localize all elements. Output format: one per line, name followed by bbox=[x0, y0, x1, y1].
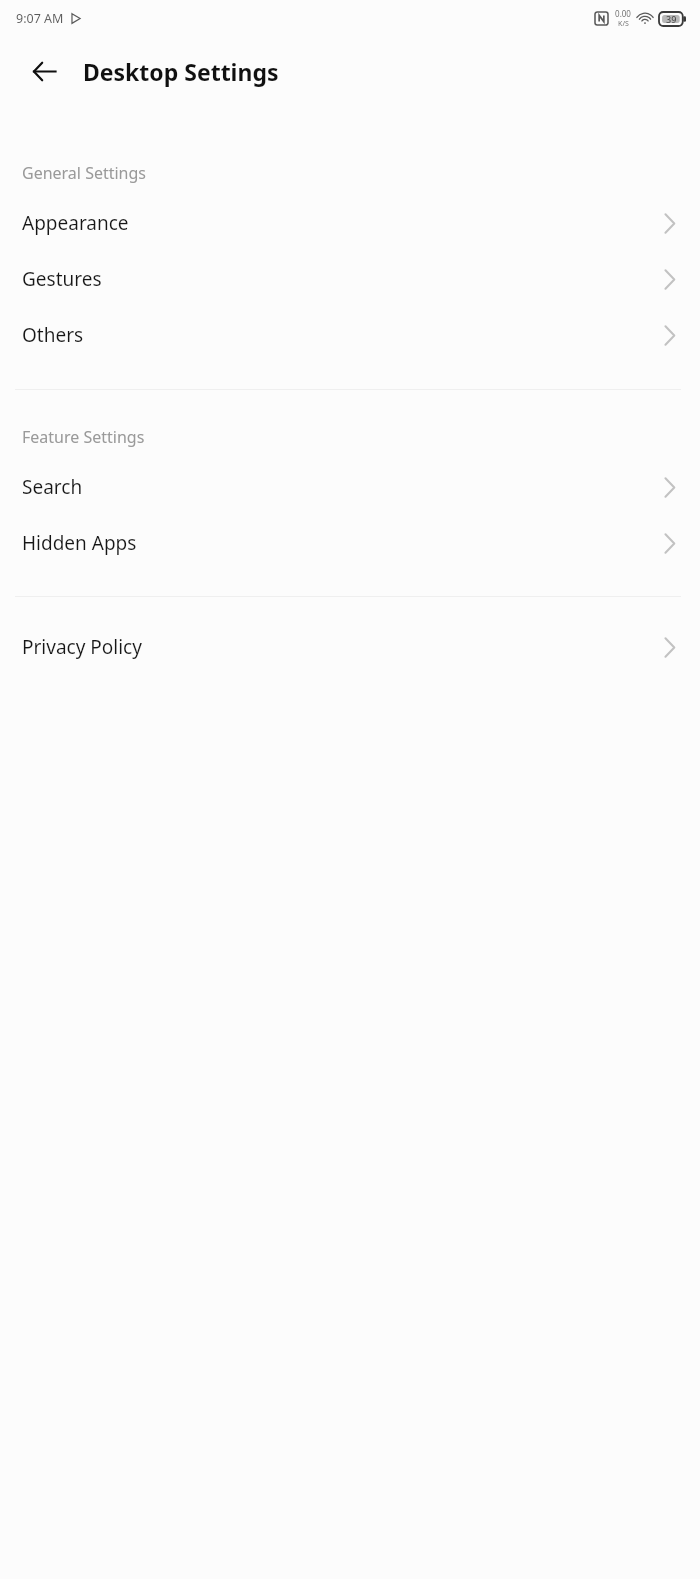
staticText: Privacy Policy bbox=[22, 634, 664, 660]
button[interactable]: Search bbox=[0, 459, 700, 515]
button[interactable]: Privacy Policy bbox=[0, 619, 700, 675]
staticText: 39 bbox=[666, 13, 677, 25]
staticText: Appearance bbox=[22, 210, 664, 236]
staticText: Others bbox=[22, 322, 664, 348]
button[interactable]: Gestures bbox=[0, 251, 700, 307]
staticText: K/S bbox=[618, 19, 629, 29]
staticText: Gestures bbox=[22, 266, 664, 292]
staticText: Feature Settings bbox=[22, 426, 145, 448]
button[interactable]: Hidden Apps bbox=[0, 515, 700, 571]
staticText: Hidden Apps bbox=[22, 530, 664, 556]
staticText: 9:07 AM bbox=[16, 10, 64, 27]
staticText: General Settings bbox=[22, 162, 147, 184]
button[interactable]: Appearance bbox=[0, 195, 700, 251]
staticText: 0.00 bbox=[615, 8, 631, 19]
staticText: Search bbox=[22, 474, 664, 500]
button[interactable]: Back bbox=[22, 49, 66, 93]
button[interactable]: Others bbox=[0, 307, 700, 363]
staticText: Desktop Settings bbox=[83, 56, 279, 87]
